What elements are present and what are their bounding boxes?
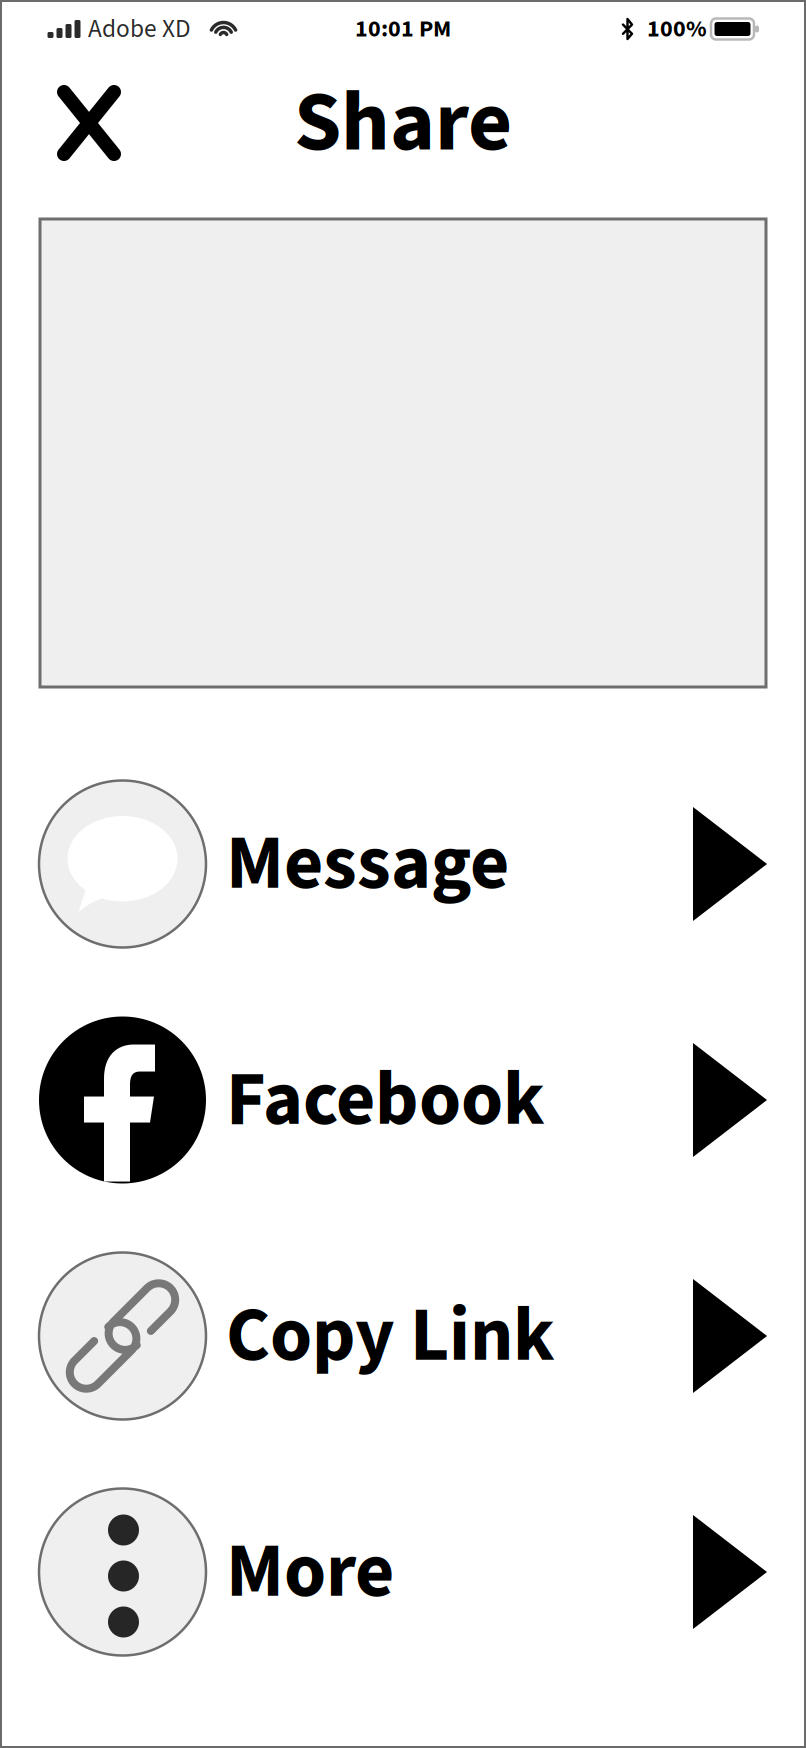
- staticText: 10:01 PM: [355, 12, 451, 46]
- staticText: Share: [294, 62, 512, 184]
- button[interactable]: Facebook: [0, 982, 806, 1218]
- button[interactable]: Message: [0, 746, 806, 982]
- staticText: 100%: [647, 12, 707, 46]
- staticText: Message: [226, 810, 509, 918]
- staticText: Copy Link: [226, 1282, 555, 1390]
- staticText: More: [226, 1518, 394, 1626]
- button[interactable]: Copy Link: [0, 1218, 806, 1454]
- staticText: Facebook: [226, 1046, 545, 1154]
- staticText: Adobe XD: [88, 11, 191, 47]
- button[interactable]: Close: [50, 78, 128, 168]
- button[interactable]: More: [0, 1454, 806, 1690]
